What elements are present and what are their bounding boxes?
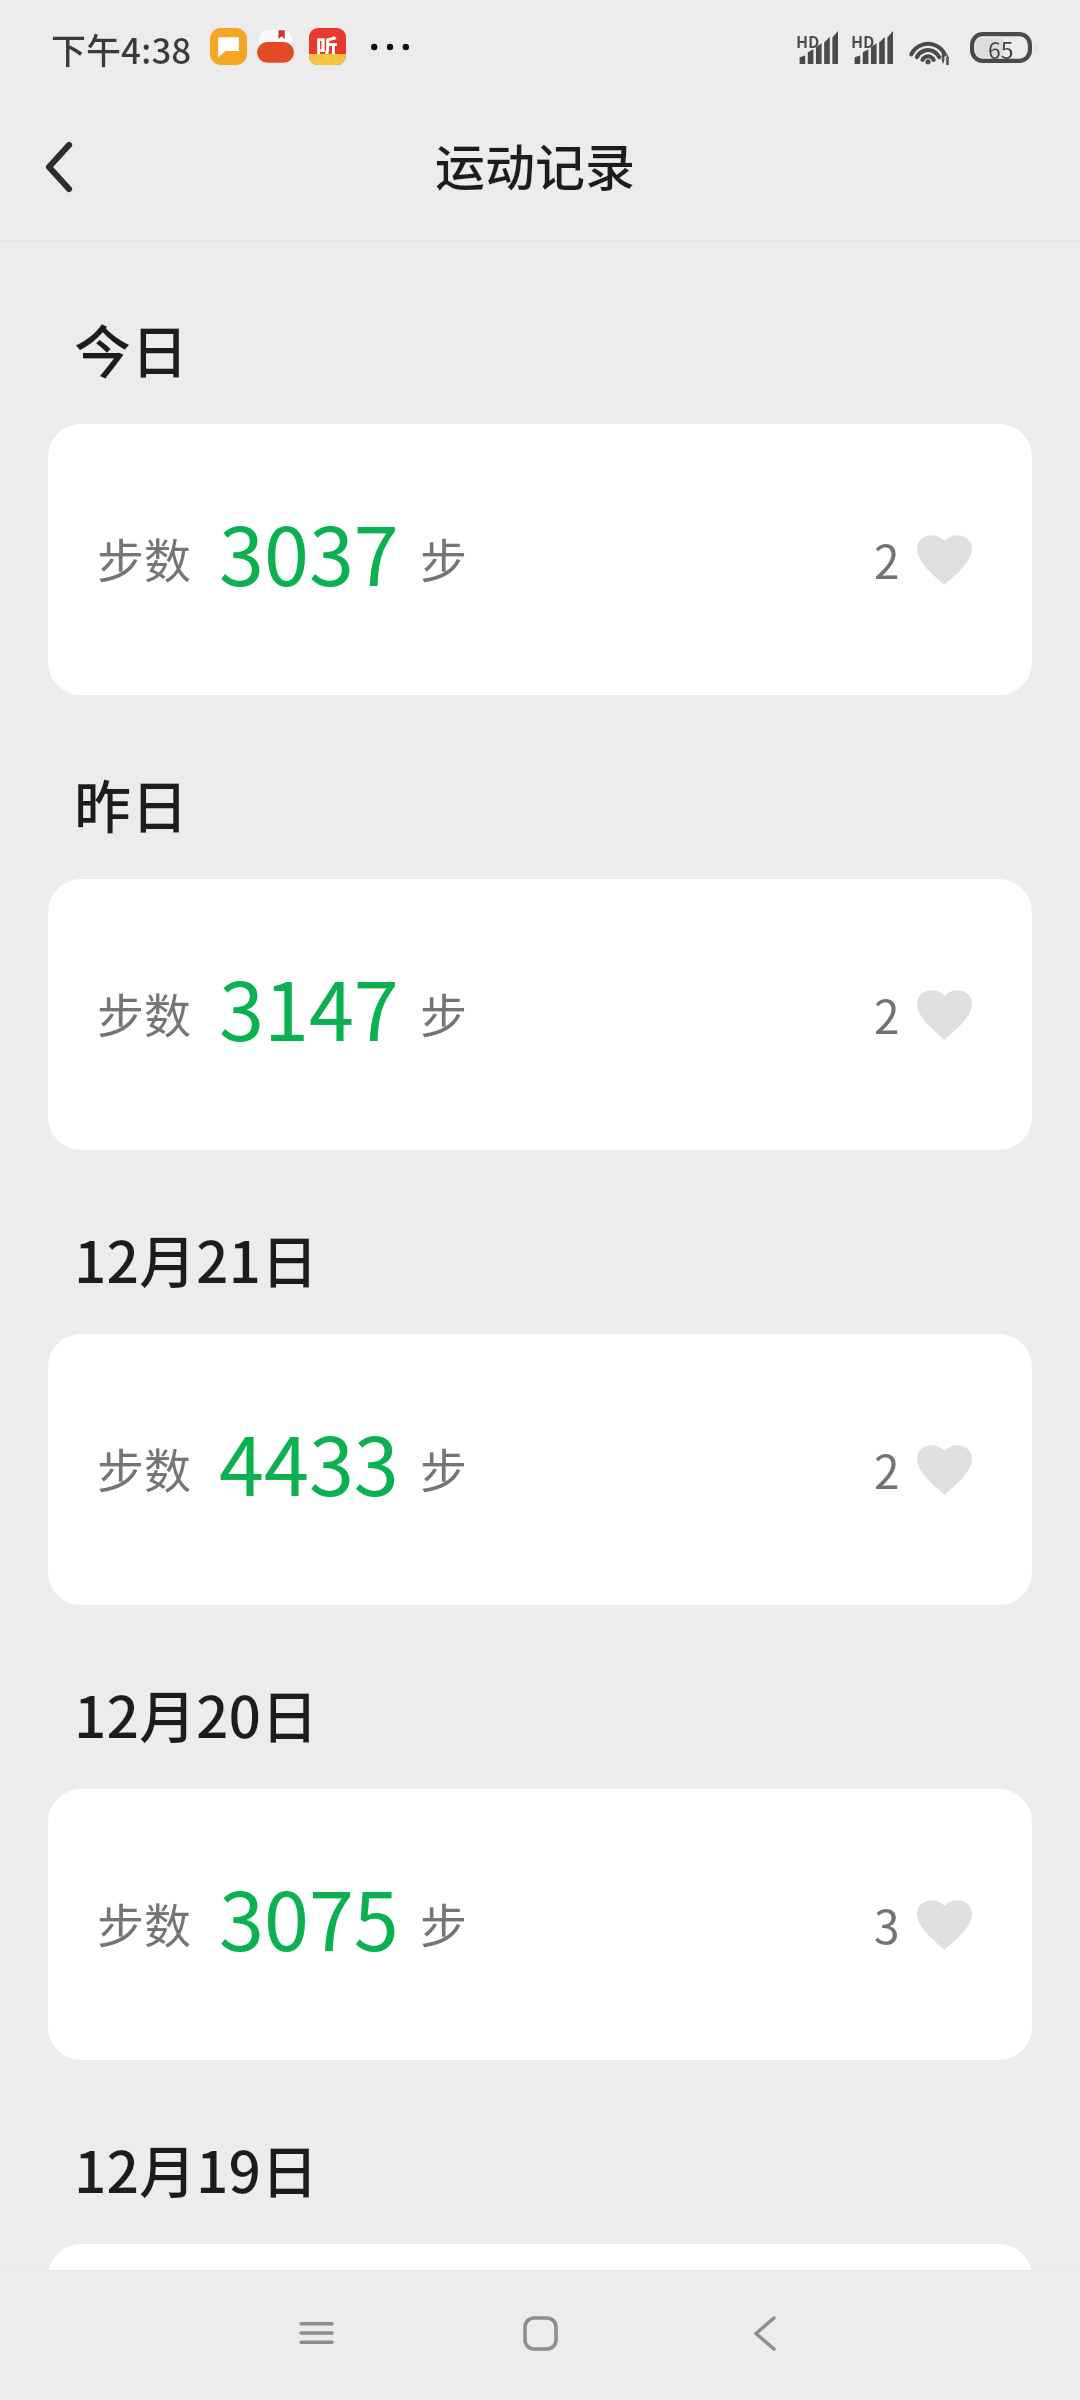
staticText: 步 (420, 978, 467, 1046)
button[interactable]: 返回 (1, 109, 117, 225)
staticText: 步数 (97, 1888, 191, 1956)
staticText: 步 (420, 523, 467, 591)
staticText: 步数 (97, 1433, 191, 1501)
button[interactable]: Back (705, 2273, 825, 2393)
staticText: 步 (420, 1888, 467, 1956)
staticText: 昨日 (74, 762, 188, 845)
staticText: 今日 (74, 307, 188, 390)
staticText: 65 (988, 32, 1014, 63)
staticText: HD (851, 29, 875, 52)
staticText: 3147 (219, 947, 399, 1064)
button[interactable]: Home (480, 2273, 600, 2393)
staticText: HD (796, 29, 820, 52)
staticText: 2 (874, 981, 900, 1048)
button[interactable]: 步数 (48, 1334, 1032, 1605)
staticText: 3 (874, 1891, 900, 1958)
staticText: 3075 (219, 1857, 399, 1974)
button[interactable]: Recent apps (256, 2273, 376, 2393)
staticText: 运动记录 (435, 128, 635, 200)
staticText: 12月21日 (74, 1217, 318, 1300)
staticText: 步数 (97, 978, 191, 1046)
staticText: 4433 (219, 1402, 399, 1519)
staticText: 2 (874, 1436, 900, 1503)
button[interactable]: 步数 (48, 1789, 1032, 2060)
staticText: 3037 (219, 492, 399, 609)
staticText: 听 (316, 29, 339, 61)
staticText: 12月20日 (74, 1672, 318, 1755)
staticText: 12月19日 (74, 2127, 318, 2210)
button[interactable]: 步数 (48, 424, 1032, 695)
staticText: 步 (420, 1433, 467, 1501)
staticText: 2 (874, 526, 900, 593)
staticText: 下午4:38 (51, 23, 192, 74)
button[interactable]: 步数 (48, 879, 1032, 1150)
staticText: 步数 (97, 523, 191, 591)
